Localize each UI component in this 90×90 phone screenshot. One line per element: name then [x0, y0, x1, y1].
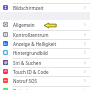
- button[interactable]: Bildschirmzeit: [0, 3, 90, 12]
- staticText: Touch ID & Code: [13, 69, 49, 75]
- button[interactable]: Anzeige & Helligkeit: [0, 39, 90, 48]
- staticText: Allgemein: [13, 22, 35, 28]
- staticText: Notruf SOS: [13, 78, 37, 84]
- button[interactable]: Hintergrundbild: [0, 48, 90, 57]
- button[interactable]: Allgemein: [0, 20, 90, 29]
- other: Annotation arrow: [0, 0, 90, 90]
- staticText: Kontrollzentrum: [13, 32, 49, 38]
- button[interactable]: Batterie: [0, 86, 90, 90]
- button[interactable]: Kontrollzentrum: [0, 30, 90, 39]
- staticText: Anzeige & Helligkeit: [13, 41, 57, 47]
- staticText: Siri & Suchen: [13, 60, 42, 66]
- button[interactable]: Siri & Suchen: [0, 58, 90, 67]
- button[interactable]: Notruf SOS: [0, 76, 90, 85]
- staticText: Bildschirmzeit: [13, 5, 44, 11]
- staticText: Hintergrundbild: [13, 50, 48, 56]
- staticText: Batterie: [13, 88, 31, 90]
- button[interactable]: Touch ID & Code: [0, 67, 90, 76]
